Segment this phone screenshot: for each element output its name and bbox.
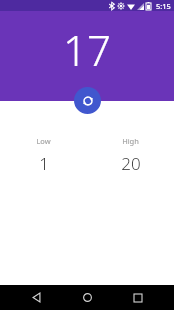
button[interactable]: 17 xyxy=(0,11,174,101)
staticText: 20 xyxy=(121,152,141,175)
staticText: 17 xyxy=(63,21,111,78)
button[interactable]: Home xyxy=(72,285,102,310)
staticText: 1 xyxy=(39,152,49,175)
staticText: 5:15 xyxy=(156,1,171,11)
button[interactable]: High xyxy=(87,136,174,175)
button[interactable]: Refresh xyxy=(74,87,101,114)
button[interactable]: Low xyxy=(0,136,87,175)
staticText: High xyxy=(122,136,139,146)
button[interactable]: Recents xyxy=(123,285,153,310)
button[interactable]: Back xyxy=(21,285,51,310)
staticText: Low xyxy=(36,136,51,146)
